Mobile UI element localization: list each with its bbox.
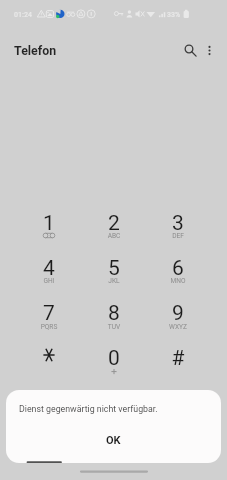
button[interactable]: star: [17, 337, 81, 381]
staticText: 8: [82, 301, 146, 326]
staticText: 7: [17, 301, 81, 326]
staticText: 5: [82, 256, 146, 281]
button[interactable]: 2: [82, 202, 146, 246]
staticText: #: [146, 346, 210, 371]
button[interactable]: 1: [17, 202, 81, 246]
button[interactable]: Search: [177, 37, 203, 63]
staticText: WXYZ: [146, 323, 210, 331]
staticText: 0: [82, 346, 146, 371]
staticText: Dienst gegenwärtig nicht verfügbar.: [19, 404, 158, 414]
button[interactable]: 7: [17, 292, 81, 336]
button[interactable]: 3: [146, 202, 210, 246]
button[interactable]: #: [146, 337, 210, 381]
staticText: OK: [106, 434, 121, 447]
button[interactable]: 4: [17, 247, 81, 291]
staticText: GHI: [17, 277, 81, 285]
staticText: 33%: [167, 9, 181, 18]
staticText: MNO: [146, 277, 210, 285]
staticText: 2: [82, 211, 146, 236]
button[interactable]: 9: [146, 292, 210, 336]
staticText: 1: [17, 211, 81, 236]
button[interactable]: Telefon: [14, 43, 57, 58]
button[interactable]: OK: [6, 418, 221, 463]
staticText: 4: [17, 256, 81, 281]
button[interactable]: 0: [82, 337, 146, 381]
button[interactable]: 6: [146, 247, 210, 291]
staticText: TUV: [82, 323, 146, 331]
staticText: JKL: [82, 277, 146, 285]
button[interactable]: 8: [82, 292, 146, 336]
button[interactable]: 5: [82, 247, 146, 291]
staticText: 9: [146, 301, 210, 326]
staticText: PQRS: [17, 323, 81, 331]
staticText: 6: [146, 256, 210, 281]
button[interactable]: More options: [196, 37, 222, 63]
staticText: 3: [146, 211, 210, 236]
staticText: ABC: [82, 232, 146, 240]
staticText: DEF: [146, 232, 210, 240]
staticText: 01:24: [14, 9, 32, 18]
